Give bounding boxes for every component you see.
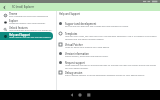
staticText: Version information [65, 52, 89, 55]
button[interactable]: Help and Support [0, 32, 53, 40]
button[interactable]: Back [0, 3, 8, 11]
button[interactable]: Theme [0, 11, 53, 18]
button[interactable]: Explore [0, 18, 53, 25]
button[interactable]: Support and development [57, 21, 160, 31]
staticText: SC (mod) Explorer [12, 5, 35, 9]
button[interactable]: Debug session [57, 70, 160, 80]
staticText: Support and development [65, 22, 97, 25]
staticText: Learn how to use this app and get suppor… [9, 36, 51, 39]
staticText: Help and Support [59, 12, 80, 15]
staticText: Unlock features [9, 26, 28, 29]
button[interactable]: Unlock features [0, 25, 53, 32]
staticText: Unlock features and support this project… [9, 29, 53, 32]
staticText: Pick a setting that suits your preferenc… [9, 15, 48, 18]
staticText: Need support? Contact us and provide log… [65, 64, 157, 70]
button[interactable]: Version information [57, 51, 160, 60]
staticText: Debug session [65, 71, 83, 74]
staticText: Request support [65, 61, 85, 64]
button[interactable]: Request support [57, 60, 160, 70]
button[interactable]: Virtual Patcher [57, 42, 160, 51]
button[interactable]: Templates [57, 31, 160, 42]
staticText: Theme [9, 12, 18, 15]
staticText: Templates [65, 32, 78, 35]
staticText: Apply or patch your module for a new dev… [65, 46, 110, 49]
staticText: Advanced options and other settings [9, 22, 46, 25]
staticText: Do you like our app? Buy me a coffee and… [65, 25, 129, 28]
staticText: Help for your cases, tips and tricks you… [65, 35, 157, 41]
staticText: Help and Support [9, 33, 30, 36]
staticText: Virtual Patcher [65, 43, 83, 46]
staticText: Check version, build date and release no… [65, 55, 109, 58]
staticText: Explore [9, 19, 18, 22]
staticText: Start a debug session to let the develop… [65, 74, 145, 77]
